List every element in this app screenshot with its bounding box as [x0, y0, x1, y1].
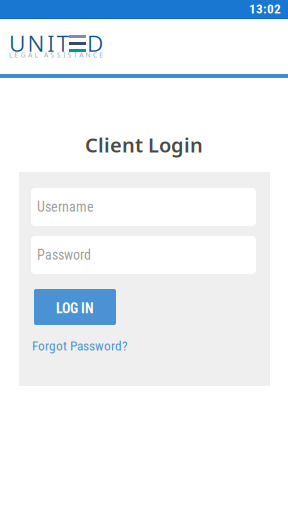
- staticText: D: [87, 28, 103, 58]
- staticText: Password: [37, 247, 91, 263]
- staticText: Forgot Password?: [32, 338, 128, 354]
- staticText: LEGAL ASSISTANCE: [9, 50, 103, 60]
- staticText: LOG IN: [56, 300, 94, 317]
- staticText: Client Login: [85, 131, 203, 158]
- button[interactable]: Forgot Password?: [32, 338, 142, 354]
- button[interactable]: LOG IN: [34, 289, 116, 325]
- staticText: 13:02: [249, 1, 281, 17]
- staticText: Username: [37, 199, 94, 215]
- staticText: UNIT: [9, 28, 69, 58]
